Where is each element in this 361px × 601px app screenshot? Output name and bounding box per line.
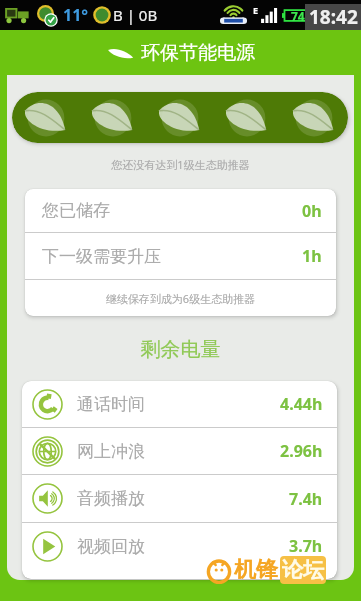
staticText: 0h <box>302 200 322 222</box>
button[interactable]: Web browsing <box>22 428 337 474</box>
staticText: 环保节能电源 <box>141 41 255 65</box>
staticText: 论坛 <box>282 557 324 583</box>
other: Video playback <box>32 531 63 562</box>
staticText: 11° <box>63 4 89 26</box>
staticText: 7.4h <box>289 488 323 510</box>
staticText: 18:42 <box>309 4 358 30</box>
staticText: 继续保存到成为6级生态助推器 <box>25 291 336 306</box>
button[interactable]: Video playback <box>22 523 337 569</box>
staticText: 下一级需要升压 <box>42 246 161 267</box>
staticText: 2.96h <box>280 440 323 462</box>
staticText: 1h <box>302 245 322 267</box>
other: Call time <box>32 389 63 420</box>
staticText: 您已储存 <box>42 200 110 221</box>
staticText: 音频播放 <box>77 488 145 509</box>
staticText: 4.44h <box>280 393 323 415</box>
staticText: E <box>253 4 259 16</box>
staticText: 网上冲浪 <box>77 441 145 462</box>
button[interactable]: Call time <box>22 381 337 427</box>
button[interactable]: 您已储存 <box>25 189 336 232</box>
button[interactable]: 下一级需要升压 <box>25 233 336 279</box>
button[interactable]: Audio playback <box>22 475 337 522</box>
staticText: 机锋 <box>234 556 278 584</box>
staticText: B | 0B <box>113 5 158 25</box>
staticText: 3.7h <box>289 535 323 557</box>
staticText: 74 <box>291 8 305 23</box>
staticText: 通话时间 <box>77 394 145 415</box>
other: Audio playback <box>32 483 63 514</box>
staticText: 您还没有达到1级生态助推器 <box>0 157 361 172</box>
staticText: 剩余电量 <box>0 337 361 362</box>
other: Web browsing <box>32 436 63 467</box>
staticText: 视频回放 <box>77 536 145 557</box>
